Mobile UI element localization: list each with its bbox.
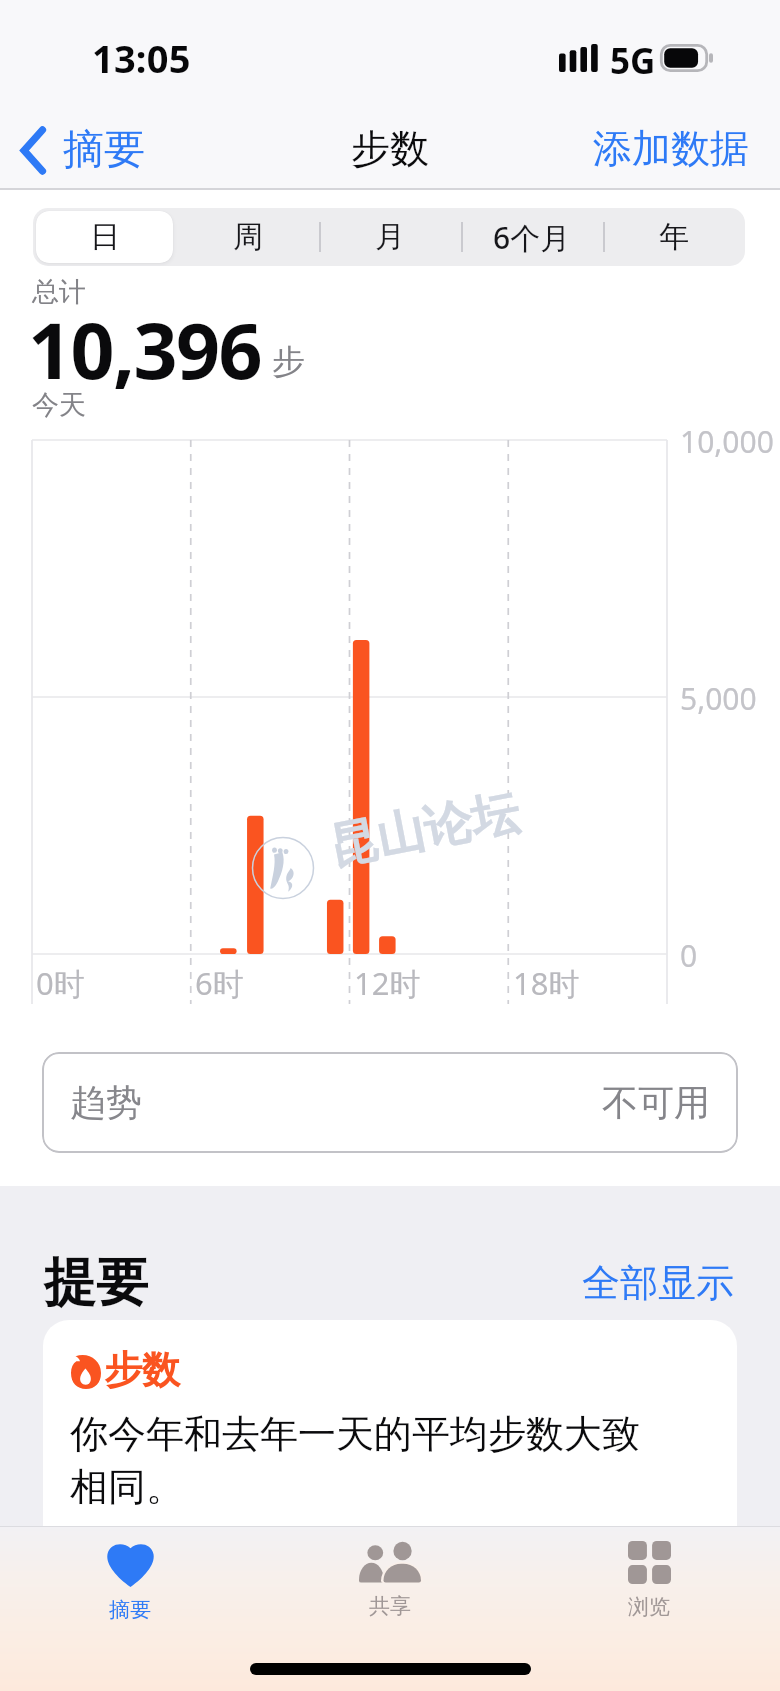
staticText: 年 [659, 218, 689, 256]
other: Browse tab [628, 1541, 671, 1584]
staticText: 0 [680, 935, 698, 976]
staticText: 13:05 [92, 32, 191, 84]
staticText: 10,000 [680, 421, 774, 462]
staticText: 浏览 [628, 1594, 670, 1620]
other: Sharing tab [359, 1541, 421, 1583]
other: Summary tab [107, 1541, 154, 1587]
button[interactable]: 日 [33, 208, 176, 266]
staticText: 月 [375, 218, 405, 256]
button[interactable]: 周 [176, 208, 319, 266]
staticText: 你今年和去年一天的平均步数大致相同。 [70, 1410, 655, 1511]
staticText: 步数 [351, 124, 429, 173]
button[interactable]: 摘要 [7, 110, 161, 190]
staticText: 10,396 [28, 297, 262, 402]
staticText: 步数 [104, 1346, 180, 1394]
button[interactable]: 添加数据 [579, 108, 763, 188]
button[interactable]: Browse tab [589, 1535, 709, 1626]
staticText: 0时 [36, 962, 85, 1004]
staticText: 周 [233, 218, 263, 256]
button[interactable]: 月 [319, 208, 461, 266]
button[interactable]: 6个月 [461, 208, 603, 266]
staticText: 日 [90, 218, 120, 256]
staticText: 5G [610, 37, 656, 85]
staticText: 今天 [32, 388, 86, 422]
button[interactable]: Sharing tab [330, 1535, 450, 1625]
staticText: 全部显示 [582, 1259, 734, 1307]
staticText: 不可用 [602, 1080, 710, 1125]
staticText: 18时 [513, 962, 580, 1004]
staticText: 摘要 [63, 124, 145, 176]
staticText: 5,000 [680, 678, 757, 719]
staticText: 12时 [354, 962, 421, 1004]
button[interactable]: 年 [603, 208, 745, 266]
staticText: 6个月 [493, 217, 571, 258]
button[interactable]: Summary tab [70, 1535, 190, 1629]
button[interactable]: 步数 [43, 1320, 737, 1527]
staticText: 昆山论坛 [324, 782, 524, 877]
staticText: 共享 [369, 1593, 411, 1619]
button[interactable]: 全部显示 [570, 1247, 746, 1319]
staticText: 提要 [44, 1250, 148, 1316]
staticText: 步 [272, 341, 305, 383]
staticText: 总计 [32, 275, 86, 309]
staticText: 添加数据 [593, 124, 749, 173]
staticText: 6时 [195, 962, 244, 1004]
staticText: 趋势 [70, 1080, 142, 1125]
staticText: 摘要 [109, 1597, 151, 1623]
button[interactable]: 趋势 [42, 1052, 738, 1153]
